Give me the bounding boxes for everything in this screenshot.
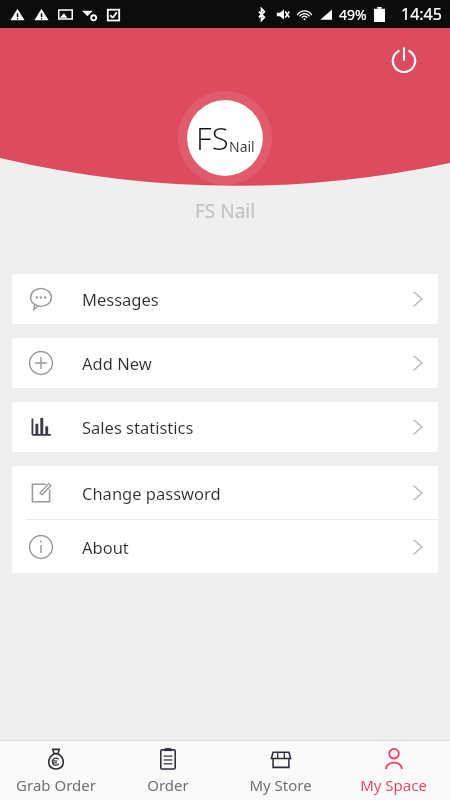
button[interactable]: Grab Order — [0, 741, 112, 800]
staticText: My Store — [249, 775, 312, 795]
staticText: Grab Order — [16, 775, 96, 795]
button[interactable]: Order — [112, 741, 224, 800]
staticText: FS — [196, 117, 229, 159]
staticText: 49% — [339, 5, 367, 24]
staticText: Sales statistics — [82, 416, 194, 438]
button[interactable]: About — [12, 520, 438, 573]
staticText: Order — [147, 775, 189, 795]
staticText: About — [82, 536, 129, 558]
button[interactable]: Messages — [12, 274, 438, 324]
button[interactable]: My Store — [224, 741, 337, 800]
staticText: Nail — [229, 137, 255, 156]
staticText: My Space — [360, 775, 427, 795]
button[interactable]: Power off — [382, 38, 426, 82]
staticText: Add New — [82, 352, 152, 374]
button[interactable]: Sales statistics — [12, 402, 438, 452]
button[interactable]: My Space — [337, 741, 450, 800]
button[interactable]: Change password — [12, 466, 438, 519]
staticText: FS Nail — [195, 198, 256, 224]
staticText: 14:45 — [401, 3, 442, 25]
staticText: Change password — [82, 482, 221, 504]
staticText: Messages — [82, 288, 159, 310]
button[interactable]: Add New — [12, 338, 438, 388]
